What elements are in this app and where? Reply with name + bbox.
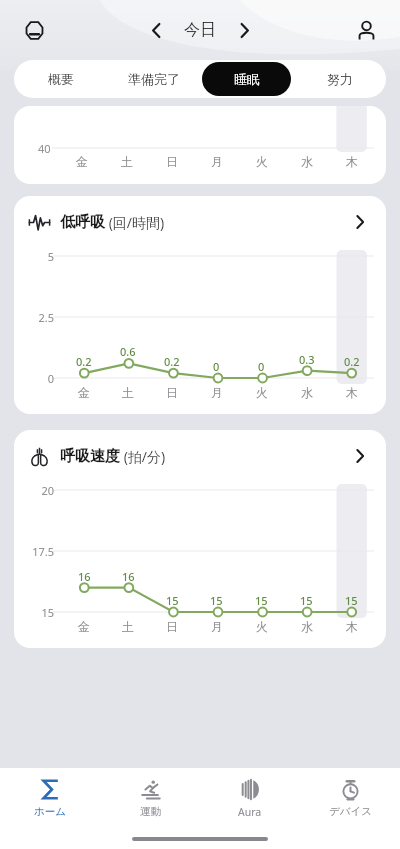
staticText: 0	[213, 359, 220, 374]
button[interactable]: 低呼吸	[14, 196, 386, 414]
staticText: 木	[346, 154, 358, 169]
button[interactable]: 今日	[178, 14, 222, 46]
staticText: 土	[122, 619, 134, 634]
staticText: Aura	[238, 805, 262, 819]
button[interactable]: デバイス	[300, 768, 400, 828]
staticText: 呼吸速度	[60, 447, 120, 466]
staticText: 20	[24, 483, 54, 498]
staticText: 0.6	[120, 344, 136, 359]
staticText: 0.2	[76, 354, 92, 369]
staticText: 低呼吸	[60, 213, 105, 232]
button[interactable]: 運動	[100, 768, 200, 828]
staticText: 努力	[327, 71, 353, 87]
staticText: 火	[256, 154, 268, 169]
staticText: 日	[166, 385, 178, 400]
staticText: 40	[38, 141, 51, 156]
staticText: 日	[166, 619, 178, 634]
staticText: 睡眠	[234, 71, 260, 87]
staticText: 土	[122, 385, 134, 400]
staticText: 15	[300, 593, 313, 608]
staticText: 0	[258, 359, 265, 374]
staticText: 水	[301, 619, 313, 634]
staticText: 金	[78, 619, 90, 634]
staticText: (回/時間)	[105, 213, 165, 232]
staticText: 木	[346, 619, 358, 634]
button[interactable]: 睡眠	[202, 62, 291, 96]
staticText: 15	[24, 605, 54, 620]
staticText: 土	[121, 154, 133, 169]
button[interactable]: 40	[14, 106, 386, 184]
button[interactable]: ホーム	[0, 768, 100, 828]
staticText: 金	[78, 385, 90, 400]
staticText: 0.2	[164, 354, 180, 369]
button[interactable]: Profile	[348, 12, 384, 48]
button[interactable]: Next day	[228, 14, 260, 46]
staticText: 15	[210, 593, 223, 608]
staticText: ホーム	[34, 805, 66, 818]
staticText: 16	[78, 569, 91, 584]
staticText: 日	[166, 154, 178, 169]
staticText: 水	[301, 154, 313, 169]
staticText: 15	[255, 593, 268, 608]
staticText: 0.2	[344, 354, 360, 369]
staticText: 5	[24, 249, 54, 264]
staticText: 月	[211, 385, 223, 400]
button[interactable]: 努力	[293, 60, 386, 98]
staticText: 火	[256, 619, 268, 634]
button[interactable]: 準備完了	[107, 60, 200, 98]
staticText: 運動	[140, 805, 161, 818]
button[interactable]: Device	[16, 12, 52, 48]
button[interactable]: Aura	[200, 768, 300, 828]
staticText: 0.3	[299, 352, 315, 367]
staticText: 今日	[184, 20, 216, 40]
staticText: 2.5	[24, 310, 54, 325]
staticText: 15	[345, 593, 358, 608]
staticText: 16	[122, 569, 135, 584]
button[interactable]: 呼吸速度	[14, 430, 386, 648]
staticText: 金	[76, 154, 88, 169]
staticText: 水	[301, 385, 313, 400]
staticText: 準備完了	[128, 71, 180, 87]
staticText: 木	[346, 385, 358, 400]
staticText: (拍/分)	[120, 447, 166, 466]
staticText: 月	[211, 619, 223, 634]
staticText: 15	[166, 593, 179, 608]
button[interactable]: Previous day	[140, 14, 172, 46]
staticText: デバイス	[329, 805, 372, 818]
staticText: 月	[211, 154, 223, 169]
staticText: 概要	[48, 71, 74, 87]
button[interactable]: 概要	[14, 60, 107, 98]
staticText: 17.5	[24, 544, 54, 559]
staticText: 火	[256, 385, 268, 400]
staticText: 0	[24, 371, 54, 386]
